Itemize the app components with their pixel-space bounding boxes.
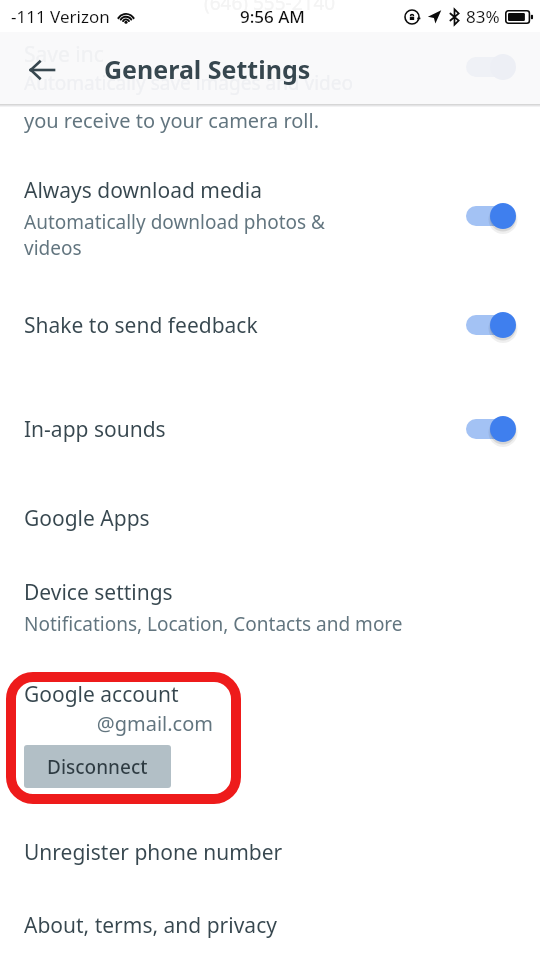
staticText: you receive to your camera roll. xyxy=(24,107,320,134)
button[interactable]: Device settings xyxy=(0,566,540,642)
button[interactable]: Unregister phone number xyxy=(0,826,540,878)
button[interactable]: Toggle xyxy=(464,412,520,446)
staticText: Device settings xyxy=(24,578,173,607)
staticText: Shake to send feedback xyxy=(24,311,258,340)
staticText: General Settings xyxy=(104,52,311,86)
staticText: Unregister phone number xyxy=(24,838,283,867)
staticText: 9:56 AM xyxy=(240,5,305,28)
button[interactable]: Toggle xyxy=(464,199,520,233)
staticText: Disconnect xyxy=(47,754,148,780)
staticText: Save inc xyxy=(24,40,104,69)
staticText: (646) 555-2140 xyxy=(204,0,336,16)
button[interactable]: Toggle xyxy=(464,308,520,342)
staticText: Google Apps xyxy=(24,504,150,533)
staticText: Google account xyxy=(24,680,179,709)
button[interactable]: Always download media xyxy=(0,160,540,260)
staticText: @gmail.com xyxy=(24,710,213,737)
button[interactable]: Disconnect xyxy=(24,745,171,788)
staticText: videos xyxy=(24,235,82,261)
staticText: About, terms, and privacy xyxy=(24,911,277,940)
button[interactable]: In-app sounds xyxy=(0,400,540,458)
staticText: Automatically save images and video xyxy=(24,70,353,96)
staticText: 83% xyxy=(466,5,500,28)
button[interactable]: Shake to send feedback xyxy=(0,296,540,354)
button[interactable]: Google Apps xyxy=(0,492,540,544)
button[interactable]: Back xyxy=(20,48,64,92)
staticText: Automatically download photos & xyxy=(24,209,326,235)
staticText: -111 Verizon xyxy=(11,5,110,28)
staticText: Always download media xyxy=(24,176,262,205)
button[interactable]: About, terms, and privacy xyxy=(0,899,540,951)
staticText: Notifications, Location, Contacts and mo… xyxy=(24,611,403,637)
staticText: In-app sounds xyxy=(24,415,166,444)
